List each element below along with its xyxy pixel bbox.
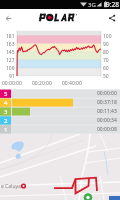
staticText: 00:11:43 (97, 108, 117, 115)
staticText: 90 (103, 41, 109, 48)
staticText: 5 (4, 90, 8, 98)
staticText: 3 (4, 108, 8, 116)
button[interactable]: Share (104, 10, 120, 26)
staticText: 9:28 (106, 0, 119, 9)
staticText: 163 (6, 41, 15, 48)
button[interactable]: Back (0, 10, 16, 26)
staticText: 00:00:00 (2, 80, 22, 87)
staticText: 2 (4, 117, 8, 125)
staticText: 109 (6, 65, 15, 72)
staticText: 00:20:00 (32, 80, 52, 87)
staticText: 00:00:00 (97, 90, 117, 97)
staticText: 4 (4, 99, 8, 107)
staticText: 100 (103, 33, 112, 40)
staticText: 00:40:00 (62, 80, 82, 87)
staticText: 127 (6, 57, 15, 64)
staticText: 91 (9, 73, 15, 80)
staticText: 00:00:08 (97, 126, 117, 133)
staticText: 00:37:18 (97, 99, 117, 106)
staticText: 00:00:34 (97, 117, 117, 124)
staticText: 145 (6, 49, 15, 56)
staticText: 80 (103, 49, 109, 56)
staticText: e Caluya (1, 183, 21, 190)
staticText: 60 (103, 65, 109, 72)
staticText: 70 (103, 57, 109, 64)
staticText: 50 (103, 73, 109, 80)
staticText: 3G (88, 1, 96, 9)
staticText: 181 (6, 33, 15, 40)
staticText: 1 (4, 126, 8, 134)
